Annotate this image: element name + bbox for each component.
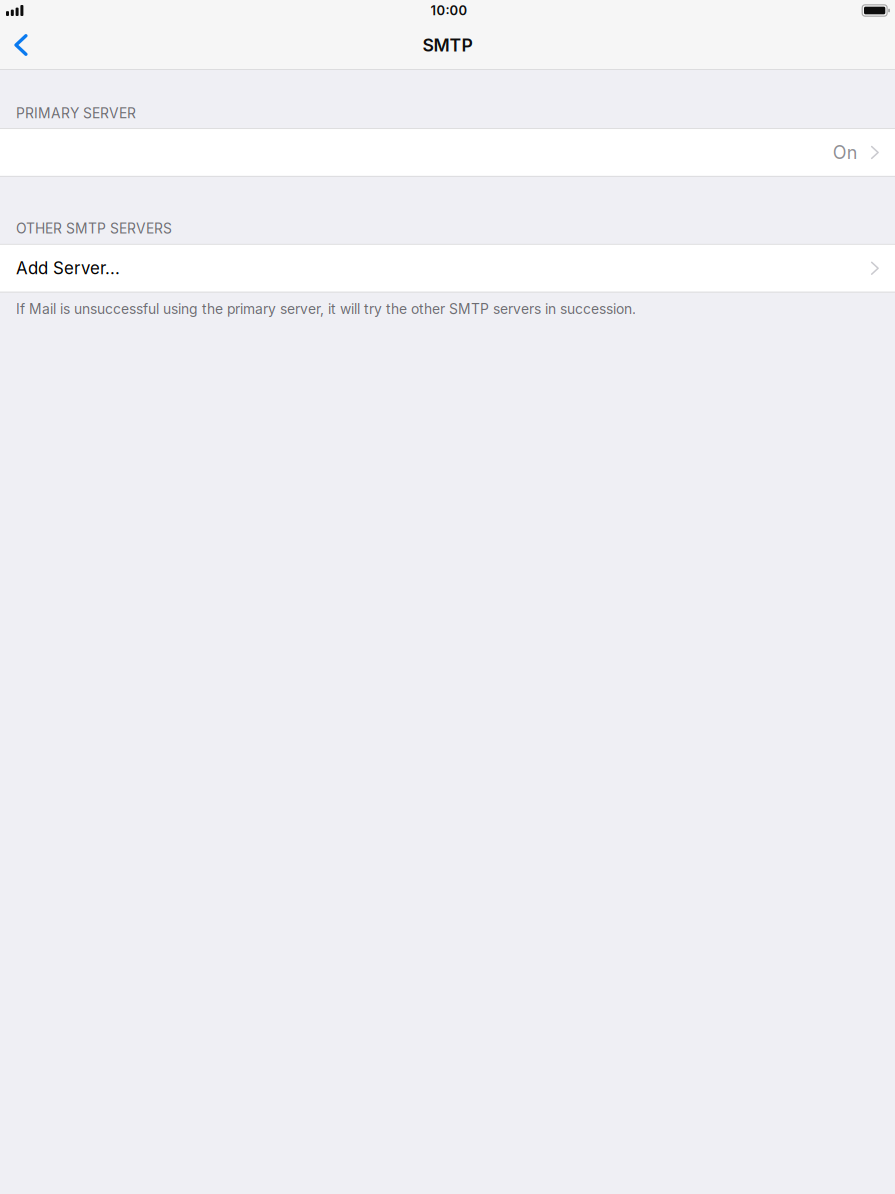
staticText: If Mail is unsuccessful using the primar…: [16, 301, 636, 317]
button[interactable]: Add Server...: [0, 245, 895, 292]
staticText: OTHER SMTP SERVERS: [16, 220, 172, 237]
staticText: SMTP: [422, 34, 472, 56]
button[interactable]: Primary Server, On: [0, 129, 895, 176]
staticText: On: [833, 142, 858, 163]
button[interactable]: Back: [0, 24, 39, 66]
staticText: PRIMARY SERVER: [16, 105, 136, 122]
staticText: Add Server...: [16, 258, 120, 278]
staticText: 10:00: [431, 3, 468, 18]
